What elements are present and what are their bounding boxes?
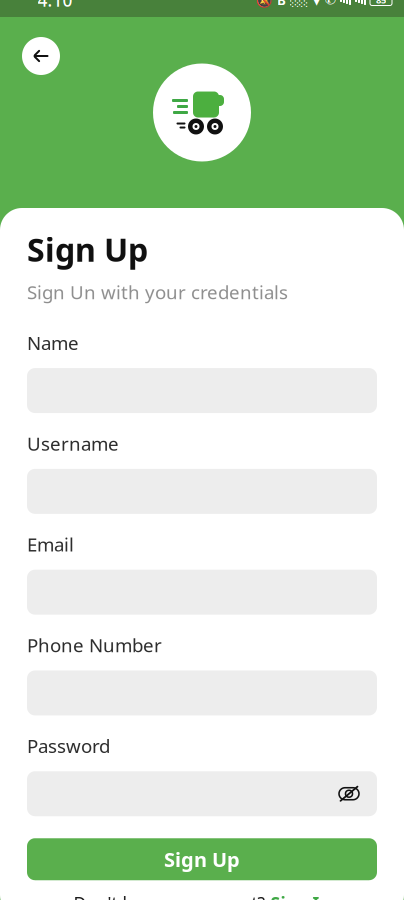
staticText: Sign Un with your credentials [27,279,288,304]
button[interactable]: Don't have an account? [27,890,377,900]
button[interactable] [27,771,377,816]
staticText: B [277,0,286,9]
button[interactable]: Back [22,37,60,75]
staticText: 85 [376,0,386,6]
staticText: Sign In [270,892,330,900]
staticText: 4:10 [37,0,72,11]
staticText: ░░ [290,0,308,7]
staticText: Username [27,431,119,456]
staticText: 🔕 [256,0,273,8]
staticText: Password [27,733,110,758]
staticText: Name [27,330,79,355]
staticText: Sign Up [27,228,148,270]
staticText: ▼ [312,0,321,7]
staticText: Email [27,532,74,557]
staticText: Sign Up [164,846,240,873]
staticText: Don't have an account? [73,892,265,900]
staticText: Phone Number [27,633,162,657]
button[interactable]: Sign Up [27,838,377,880]
staticText: ✆ [325,0,336,7]
